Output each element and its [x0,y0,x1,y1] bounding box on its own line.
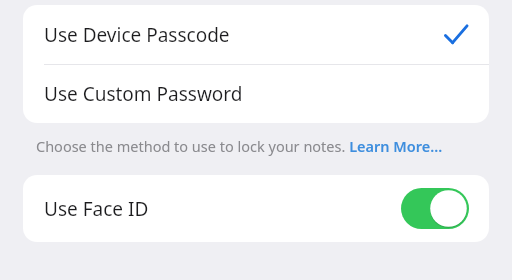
button[interactable]: Use Face ID [23,175,489,242]
button[interactable]: Use Device Passcode [23,5,489,64]
other: Selected [444,23,468,47]
button[interactable]: Choose the method to use to lock your no… [36,136,443,156]
staticText: Choose the method to use to lock your no… [36,136,443,156]
staticText: Use Face ID [44,196,149,222]
staticText: Use Device Passcode [44,22,230,48]
button[interactable]: Use Custom Password [23,65,489,123]
staticText: Use Custom Password [44,81,243,107]
button[interactable]: Use Face ID toggle [401,188,469,229]
